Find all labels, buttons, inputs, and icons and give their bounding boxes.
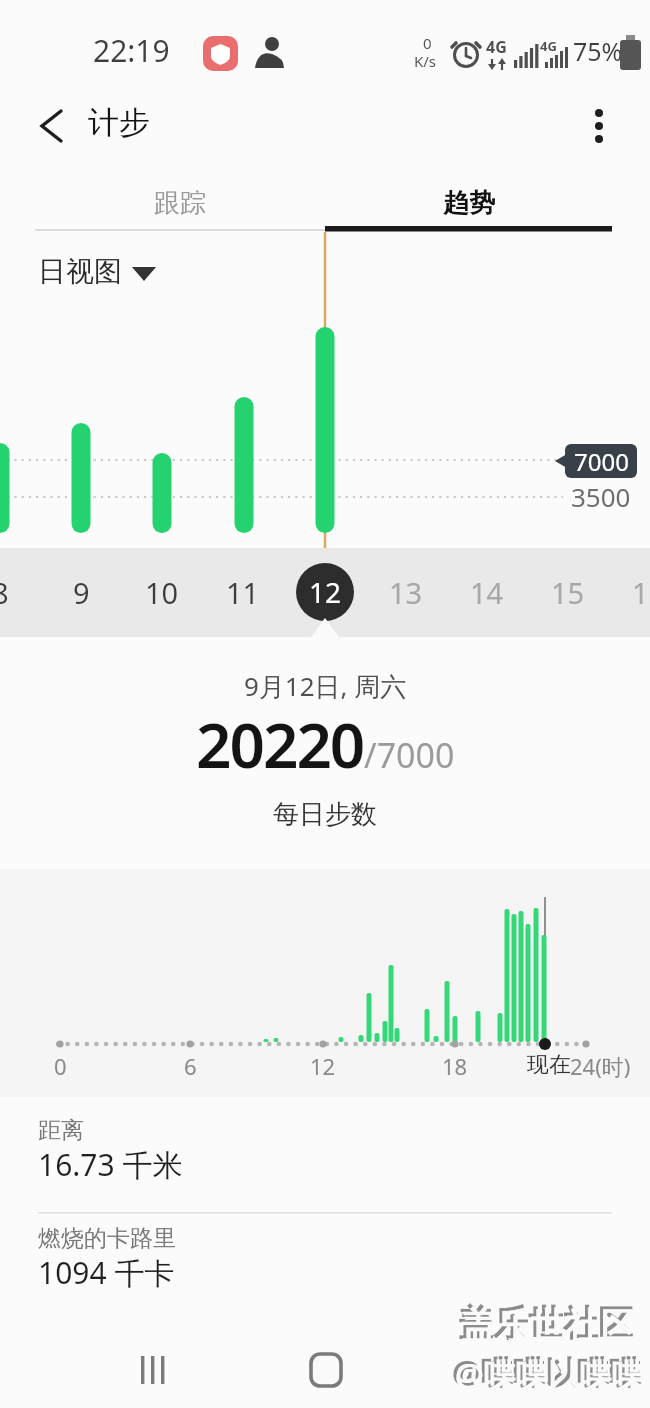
staticText: 距离	[38, 1116, 84, 1145]
staticText: 每日步数	[273, 798, 377, 831]
staticText: 1094 千卡	[38, 1252, 175, 1293]
staticText: 6	[184, 1051, 197, 1081]
staticText: 燃烧的卡路里	[38, 1224, 176, 1253]
staticText: @喋喋以喋喋	[452, 1350, 641, 1394]
staticText: K/s	[414, 51, 437, 71]
staticText: /7000	[364, 732, 455, 778]
button[interactable]	[460, 1344, 530, 1400]
staticText: 24(时)	[570, 1051, 631, 1081]
button[interactable]: 14	[447, 548, 527, 637]
button[interactable]: 10	[122, 548, 202, 637]
button[interactable]: 13	[366, 548, 446, 637]
staticText: 日视图	[38, 254, 122, 289]
staticText: 12	[310, 1051, 336, 1081]
button[interactable]	[30, 104, 74, 148]
staticText: 75%	[573, 34, 623, 68]
staticText: 跟踪	[154, 187, 206, 220]
staticText: 盖乐世社区	[458, 1301, 633, 1345]
staticText: 16.73 千米	[38, 1144, 183, 1185]
button[interactable]: 9	[41, 548, 121, 637]
staticText: 9	[73, 573, 90, 612]
button[interactable]: 跟踪	[35, 176, 325, 231]
staticText: 趋势	[443, 187, 495, 220]
staticText: 14	[470, 573, 504, 612]
staticText: 0	[54, 1051, 67, 1081]
staticText: 8	[0, 573, 9, 612]
staticText: 7000	[574, 445, 629, 478]
button[interactable]	[578, 104, 622, 148]
staticText: 18	[442, 1051, 468, 1081]
button[interactable]: 15	[528, 548, 608, 637]
staticText: 计步	[88, 103, 150, 142]
button[interactable]	[118, 1344, 188, 1400]
staticText: 10	[145, 573, 179, 612]
staticText: 现在	[527, 1051, 571, 1079]
button[interactable]: 趋势	[325, 176, 612, 231]
staticText: @喋喋以喋喋	[455, 1353, 644, 1397]
staticText: 4G	[540, 37, 557, 55]
button[interactable]: 11	[203, 548, 283, 637]
staticText: 0	[423, 33, 432, 53]
staticText: 20220	[196, 702, 364, 786]
staticText: 16	[632, 573, 650, 612]
staticText: 3500	[571, 479, 631, 514]
staticText: 盖乐世社区	[461, 1304, 636, 1348]
button[interactable]: 12	[296, 563, 354, 621]
staticText: 11	[226, 573, 260, 612]
button[interactable]: 日视图	[38, 254, 146, 289]
staticText: 9月12日, 周六	[244, 668, 407, 704]
button[interactable]: 16	[609, 548, 650, 637]
button[interactable]: 8	[0, 548, 40, 637]
button[interactable]	[291, 1344, 361, 1400]
staticText: 13	[389, 573, 423, 612]
staticText: 22:19	[93, 30, 170, 71]
staticText: 15	[551, 573, 585, 612]
staticText: 4G	[486, 36, 507, 58]
staticText: 12	[309, 573, 342, 611]
